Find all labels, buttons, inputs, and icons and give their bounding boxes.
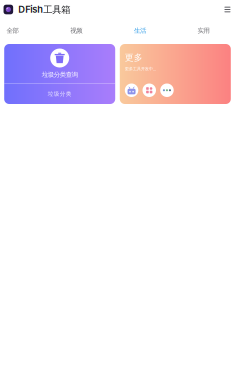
button[interactable]: 全部 — [0, 24, 44, 37]
button[interactable]: 视频 — [44, 24, 108, 37]
staticText: 全部 — [6, 26, 18, 35]
button[interactable]: 生活 — [108, 24, 172, 37]
staticText: 更多工具开发中... — [125, 66, 156, 71]
button[interactable]: 垃圾分类查询 — [4, 44, 115, 104]
staticText: 生活 — [134, 26, 146, 35]
staticText: DFish工具箱 — [18, 4, 70, 15]
staticText: 视频 — [70, 26, 82, 35]
staticText: 实用 — [198, 26, 210, 35]
staticText: 垃圾分类查询 — [42, 70, 78, 79]
button[interactable]: 更多 — [120, 44, 231, 104]
button[interactable]: Menu — [221, 4, 233, 15]
button[interactable]: 实用 — [172, 24, 235, 37]
staticText: 垃圾分类 — [48, 90, 72, 97]
staticText: 更多 — [125, 52, 143, 63]
